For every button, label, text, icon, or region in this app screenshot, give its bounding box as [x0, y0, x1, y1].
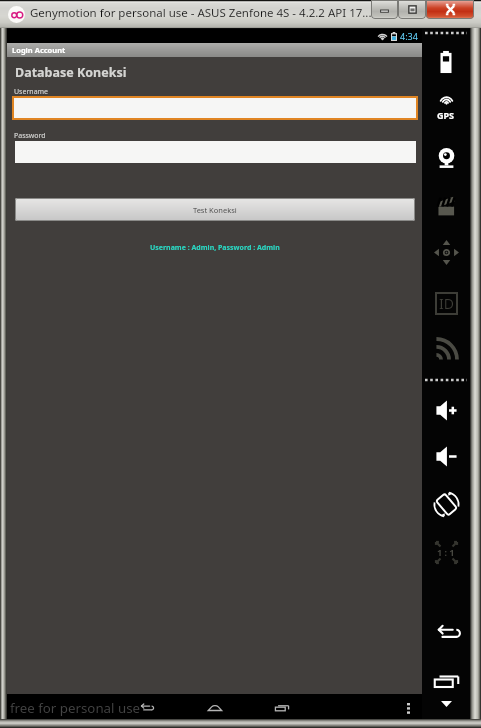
- staticText: ID: [439, 294, 454, 313]
- staticText: 4:34: [400, 30, 418, 42]
- button[interactable]: Recent apps: [422, 666, 470, 696]
- staticText: 1 : 1: [437, 546, 455, 558]
- button[interactable]: Back: [422, 619, 470, 649]
- staticText: Username: [14, 87, 49, 97]
- button[interactable]: Minimize: [371, 0, 398, 19]
- staticText: free for personal use: [10, 699, 141, 717]
- staticText: Test Koneksi: [193, 205, 237, 215]
- button[interactable]: GPS: [422, 96, 470, 130]
- button[interactable]: Battery: [422, 47, 470, 77]
- staticText: Database Koneksi: [15, 64, 127, 81]
- button[interactable]: Home: [201, 694, 229, 721]
- staticText: Username : Admin, Password : Admin: [150, 243, 280, 253]
- other: Genymotion: [8, 6, 25, 23]
- staticText: GPS: [437, 109, 455, 121]
- button[interactable]: Volume down: [422, 441, 470, 471]
- button[interactable]: Record video: [422, 190, 470, 220]
- button[interactable]: Login Account: [7, 43, 422, 57]
- button[interactable]: Identifiers: [422, 288, 470, 318]
- button[interactable]: Maximize: [398, 0, 426, 19]
- button[interactable]: Recent apps: [268, 694, 296, 721]
- button[interactable]: Actual size: [422, 537, 470, 567]
- button[interactable]: More: [422, 695, 470, 713]
- button[interactable]: Rotate: [422, 489, 470, 519]
- staticText: Login Account: [12, 45, 66, 55]
- button[interactable]: Navigation pad: [422, 237, 470, 267]
- button[interactable]: Test Koneksi: [15, 198, 415, 221]
- button[interactable]: Network: [422, 334, 470, 364]
- button[interactable]: Volume up: [422, 395, 470, 425]
- staticText: Password: [14, 131, 46, 141]
- button[interactable]: More options: [397, 694, 419, 721]
- staticText: Genymotion for personal use - ASUS Zenfo…: [30, 5, 372, 21]
- button[interactable]: Back: [132, 694, 160, 721]
- button[interactable]: Close: [426, 0, 474, 19]
- button[interactable]: Camera: [422, 143, 470, 173]
